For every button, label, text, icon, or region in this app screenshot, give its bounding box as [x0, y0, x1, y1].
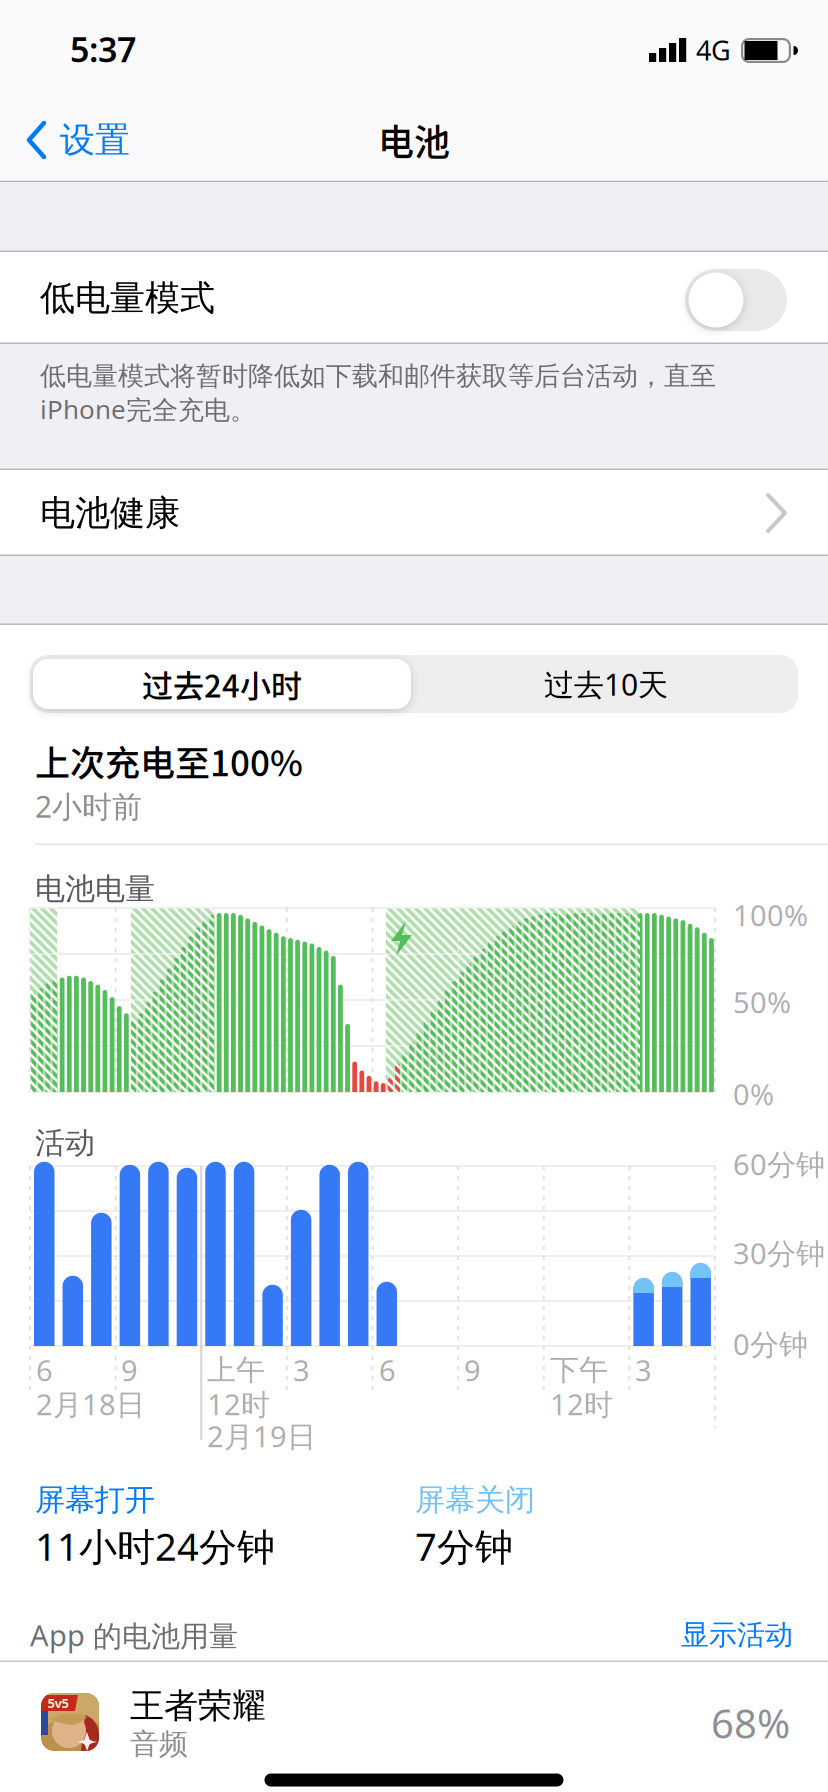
- button[interactable]: 5v5: [0, 1662, 828, 1786]
- staticText: 过去10天: [544, 664, 668, 704]
- staticText: 电池电量: [35, 870, 155, 908]
- button[interactable]: 低电量模式: [685, 269, 787, 331]
- staticText: 2月19日: [207, 1416, 316, 1456]
- staticText: 屏幕关闭: [415, 1481, 535, 1519]
- staticText: 低电量模式: [40, 276, 215, 320]
- staticText: 2月18日: [36, 1384, 145, 1424]
- staticText: 6: [379, 1350, 396, 1390]
- staticText: 6: [36, 1350, 53, 1390]
- staticText: 过去24小时: [142, 662, 302, 706]
- staticText: 低电量模式将暂时降低如下载和邮件获取等后台活动，直至: [40, 360, 716, 392]
- button[interactable]: 屏幕关闭: [415, 1472, 585, 1528]
- button[interactable]: 过去10天: [414, 655, 798, 713]
- staticText: 显示活动: [681, 1617, 793, 1653]
- staticText: 100%: [733, 895, 808, 935]
- staticText: 9: [121, 1350, 138, 1390]
- staticText: 设置: [60, 118, 130, 162]
- staticText: 王者荣耀: [130, 1685, 266, 1727]
- staticText: 30分钟: [733, 1233, 825, 1273]
- staticText: iPhone完全充电。: [40, 391, 256, 427]
- staticText: 4G: [696, 32, 731, 68]
- staticText: 上午: [207, 1352, 265, 1388]
- staticText: 电池: [378, 114, 450, 166]
- button[interactable]: 屏幕打开: [35, 1472, 205, 1528]
- staticText: 3: [293, 1350, 310, 1390]
- staticText: 0%: [733, 1074, 774, 1114]
- staticText: 9: [464, 1350, 481, 1390]
- button[interactable]: 显示活动: [613, 1607, 793, 1663]
- button[interactable]: 电池健康: [0, 470, 828, 556]
- staticText: 60分钟: [733, 1144, 825, 1184]
- button[interactable]: 返回设置: [26, 110, 186, 170]
- staticText: 12时: [207, 1384, 270, 1424]
- staticText: 活动: [35, 1124, 95, 1162]
- staticText: 上次充电至100%: [35, 736, 303, 786]
- staticText: 电池健康: [40, 491, 180, 535]
- staticText: 0分钟: [733, 1324, 808, 1364]
- button[interactable]: 过去24小时: [30, 655, 414, 713]
- staticText: App 的电池用量: [30, 1615, 238, 1655]
- staticText: 5:37: [70, 26, 136, 72]
- staticText: 12时: [550, 1384, 613, 1424]
- staticText: 50%: [733, 982, 791, 1022]
- staticText: 屏幕打开: [35, 1481, 155, 1519]
- staticText: 下午: [550, 1352, 608, 1388]
- staticText: 68%: [711, 1696, 790, 1750]
- staticText: 11小时24分钟: [35, 1520, 275, 1572]
- staticText: 5v5: [47, 1694, 68, 1712]
- staticText: 2小时前: [35, 786, 142, 826]
- staticText: 音频: [130, 1726, 188, 1762]
- staticText: 3: [635, 1350, 652, 1390]
- staticText: 7分钟: [415, 1520, 513, 1572]
